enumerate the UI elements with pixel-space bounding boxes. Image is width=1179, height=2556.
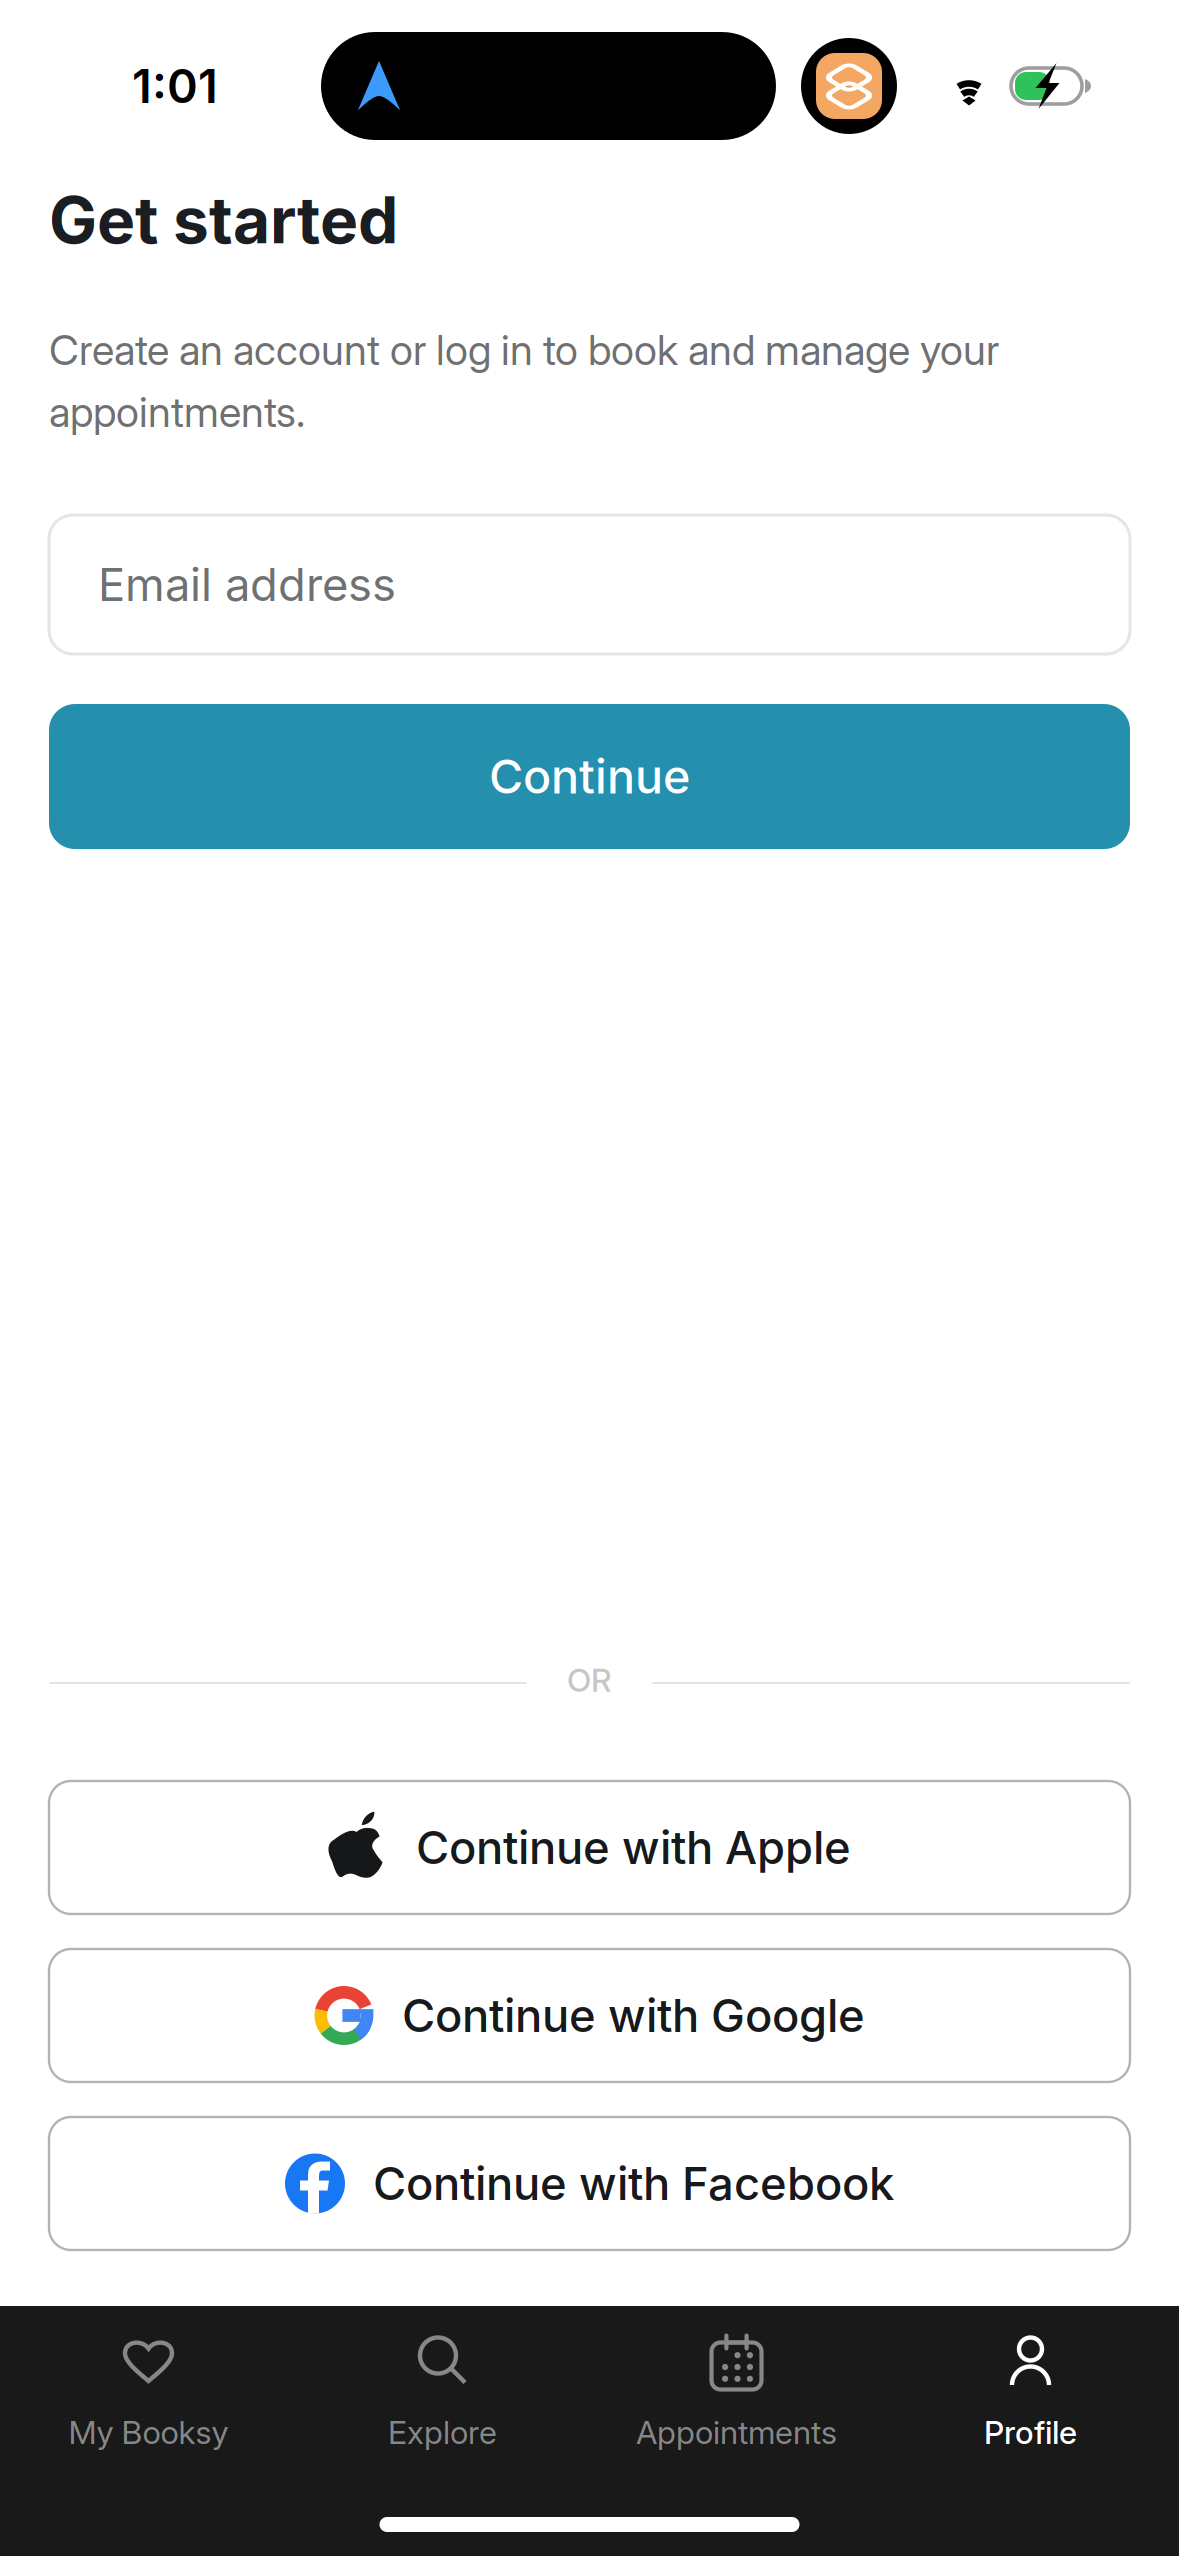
button[interactable]: Continue	[49, 704, 1130, 849]
staticText: Continue	[489, 748, 690, 805]
staticText: Continue with Facebook	[373, 2156, 894, 2211]
staticText: Create an account or log in to book and …	[49, 325, 999, 437]
staticText: Appointments	[636, 2413, 837, 2452]
staticText: 1:01	[132, 58, 218, 114]
button[interactable]: Appointments	[589, 2306, 883, 2476]
staticText: Email address	[98, 557, 396, 612]
staticText: Explore	[388, 2413, 497, 2452]
staticText: Continue with Apple	[416, 1820, 851, 1875]
button[interactable]: Profile	[883, 2306, 1177, 2476]
button[interactable]: Continue with Apple	[49, 1781, 1130, 1914]
button[interactable]: My Booksy	[1, 2306, 295, 2476]
button[interactable]: Continue with Facebook	[49, 2117, 1130, 2250]
button[interactable]: Explore	[295, 2306, 589, 2476]
button[interactable]: Continue with Google	[49, 1949, 1130, 2082]
staticText: Continue with Google	[402, 1988, 865, 2043]
button[interactable]: Email address	[49, 515, 1130, 654]
staticText: OR	[567, 1661, 612, 1699]
staticText: Get started	[49, 181, 398, 259]
staticText: Profile	[984, 2413, 1077, 2452]
staticText: My Booksy	[68, 2413, 228, 2452]
